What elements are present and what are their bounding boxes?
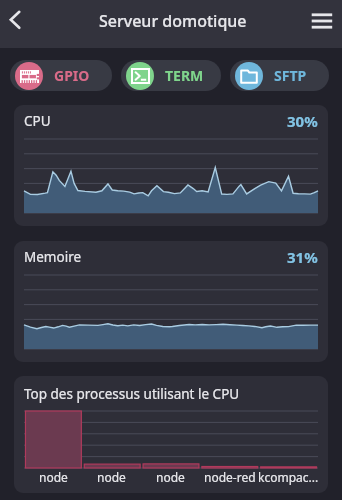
staticText: node-red (204, 469, 256, 485)
button[interactable]: CPU (14, 105, 328, 226)
staticText: 30% (287, 111, 318, 131)
button[interactable]: SFTP (230, 60, 329, 91)
button[interactable]: Top des processus utilisant le CPU (14, 376, 328, 493)
staticText: CPU (24, 112, 51, 130)
staticText: Memoire (24, 248, 82, 266)
staticText: 31% (287, 247, 318, 267)
staticText: node (156, 469, 185, 485)
staticText: kcompac... (258, 469, 319, 485)
button[interactable]: Memoire (14, 241, 328, 362)
staticText: node (97, 469, 126, 485)
staticText: SFTP (274, 66, 307, 85)
staticText: node (39, 469, 68, 485)
button[interactable]: TERM (121, 60, 221, 91)
staticText: Top des processus utilisant le CPU (24, 385, 240, 403)
button[interactable]: Back (0, 0, 34, 44)
staticText: TERM (165, 66, 204, 85)
button[interactable]: GPIO (10, 60, 112, 91)
button[interactable]: Menu (300, 0, 342, 44)
staticText: GPIO (54, 66, 90, 85)
staticText: Serveur domotique (99, 10, 247, 32)
